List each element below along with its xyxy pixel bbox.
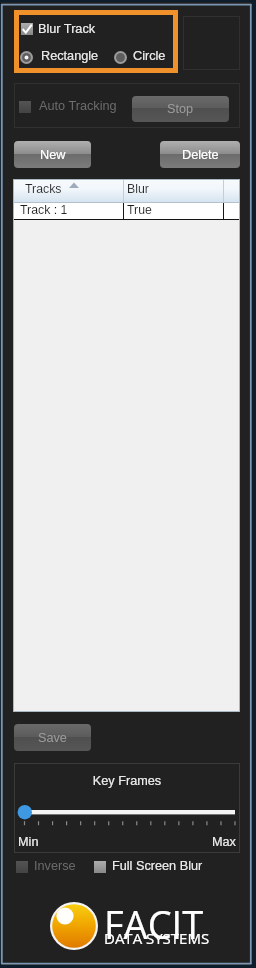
staticText: Delete [182,148,219,162]
staticText: Stop [167,102,194,116]
button[interactable]: Stop [132,96,229,122]
button[interactable]: Save [14,724,91,751]
staticText: New [40,148,66,162]
button[interactable]: Delete [160,141,240,168]
staticText: Blur Track [38,22,96,36]
staticText: Key Frames [14,774,240,788]
staticText: Tracks [25,182,62,196]
button[interactable]: Rectangle [20,48,94,64]
staticText: True [127,203,152,217]
button[interactable]: Full Screen Blur [94,858,199,874]
staticText: Min [18,835,39,849]
staticText: Save [38,731,67,745]
button[interactable]: Inverse [16,858,74,874]
staticText: DATA SYSTEMS [104,928,210,948]
button[interactable]: New [14,141,91,168]
staticText: FACIT [104,898,204,950]
button[interactable]: Auto Tracking [19,98,116,113]
button[interactable]: Circle [114,48,170,64]
staticText: Full Screen Blur [112,859,203,873]
staticText: Circle [133,49,166,63]
staticText: Track : 1 [20,203,68,217]
staticText: Inverse [34,859,76,873]
button[interactable]: Key frame position [14,800,240,828]
staticText: Auto Tracking [39,99,117,113]
staticText: Blur [127,182,149,196]
button[interactable]: Blur Track [20,21,96,37]
staticText: Max [212,835,236,849]
staticText: Rectangle [41,49,99,63]
button[interactable] [14,203,239,219]
